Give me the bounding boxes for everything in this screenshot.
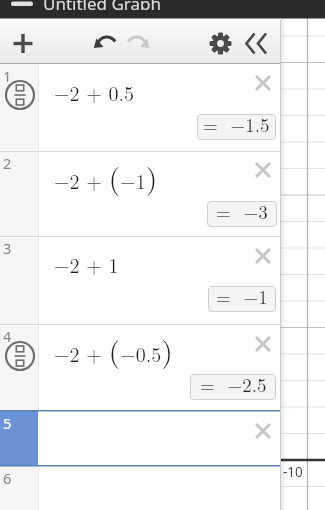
staticText: 6	[3, 468, 12, 488]
staticText: -10	[283, 463, 303, 481]
staticText: = −3	[216, 198, 268, 224]
button[interactable]	[198, 18, 242, 64]
button[interactable]	[38, 64, 280, 151]
button[interactable]	[4, 340, 36, 372]
staticText: 5	[3, 413, 12, 433]
staticText: −2 + (−0.5)	[54, 328, 173, 371]
button[interactable]	[0, 0, 44, 18]
button[interactable]	[251, 332, 275, 356]
button[interactable]	[38, 325, 280, 411]
staticText: Untitled Graph	[43, 0, 161, 10]
button[interactable]	[38, 237, 280, 325]
staticText: 3	[3, 238, 12, 258]
staticText: 4	[3, 326, 12, 346]
staticText: = −1	[216, 283, 268, 309]
button[interactable]	[38, 151, 280, 237]
staticText: −2 + (−1)	[54, 155, 158, 198]
button[interactable]	[251, 71, 275, 95]
button[interactable]	[251, 419, 275, 443]
button[interactable]	[124, 18, 160, 64]
staticText: 1	[3, 66, 12, 86]
button[interactable]	[242, 18, 280, 64]
button[interactable]	[251, 244, 275, 268]
staticText: −2 + 1	[54, 250, 119, 278]
button[interactable]	[251, 158, 275, 182]
button[interactable]	[88, 18, 124, 64]
staticText: 2	[3, 153, 12, 173]
button[interactable]	[38, 466, 280, 510]
button[interactable]: = −1.5	[197, 114, 276, 140]
button[interactable]: = −1	[208, 286, 276, 312]
button[interactable]	[38, 411, 280, 466]
staticText: = −2.5	[200, 371, 267, 397]
button[interactable]	[0, 18, 46, 64]
button[interactable]: = −3	[207, 201, 277, 227]
button[interactable]: = −2.5	[190, 374, 276, 400]
staticText: −2 + 0.5	[54, 78, 134, 106]
staticText: = −1.5	[203, 111, 270, 137]
button[interactable]	[4, 79, 36, 111]
